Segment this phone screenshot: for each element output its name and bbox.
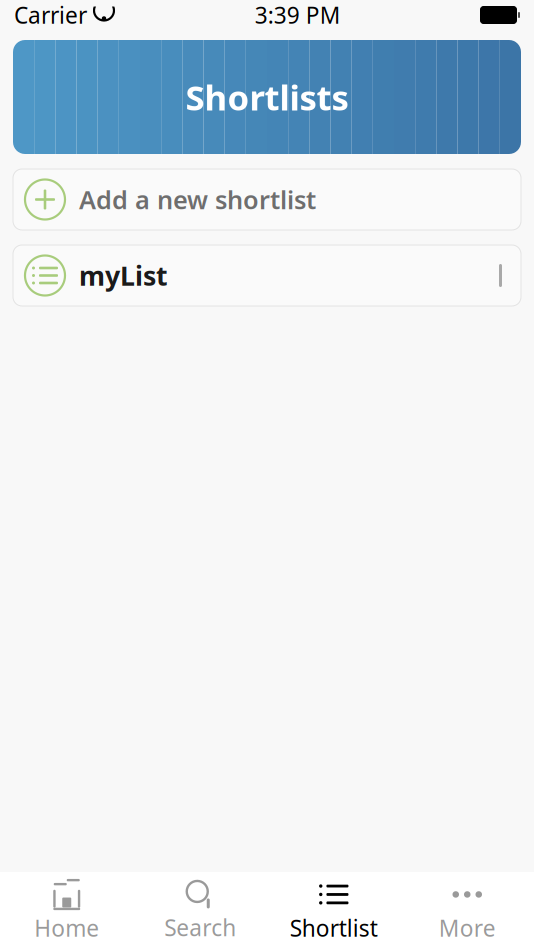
button[interactable]: Shortlist — [267, 878, 400, 944]
button[interactable]: myList — [13, 245, 521, 306]
staticText: Shortlist — [290, 913, 378, 943]
staticText: myList — [79, 258, 168, 293]
staticText: Home — [34, 913, 99, 943]
staticText: 3:39 PM — [255, 0, 341, 30]
staticText: Carrier — [14, 0, 87, 30]
button[interactable]: Home — [0, 878, 133, 944]
staticText: Search — [164, 912, 236, 942]
button[interactable]: More — [400, 878, 534, 944]
button[interactable]: Search — [133, 878, 267, 944]
staticText: More — [439, 913, 496, 943]
staticText: Add a new shortlist — [79, 183, 316, 216]
button[interactable]: Add a new shortlist — [13, 169, 521, 230]
staticText: Shortlists — [185, 74, 348, 120]
